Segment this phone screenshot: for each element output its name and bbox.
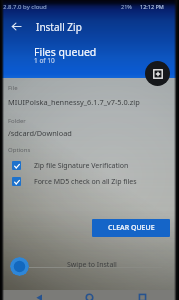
button[interactable]: Recents <box>136 293 149 300</box>
staticText: 2.8.7.0 by cloud <box>3 3 47 11</box>
staticText: Folder <box>8 117 26 125</box>
button[interactable]: Add file <box>145 61 170 86</box>
staticText: Options <box>8 146 31 154</box>
button[interactable]: Home <box>83 293 96 300</box>
staticText: Swipe to Install <box>67 260 117 270</box>
staticText: Install Zip <box>36 20 82 34</box>
button[interactable]: Back <box>8 18 24 34</box>
button[interactable]: Force MD5 check on all Zip files <box>12 176 162 187</box>
button[interactable]: Zip file Signature Verification <box>12 160 162 171</box>
staticText: 12:12 PM <box>140 3 164 10</box>
button[interactable]: Swipe to install <box>10 257 29 276</box>
staticText: MIUIPolska_hennessy_6.1.7_v7-5.0.zip <box>8 97 140 107</box>
button[interactable]: CLEAR QUEUE <box>92 219 170 237</box>
staticText: /sdcard/Download <box>8 128 72 138</box>
staticText: Files queued <box>34 45 97 59</box>
staticText: Force MD5 check on all Zip files <box>34 177 137 187</box>
staticText: File <box>8 84 18 92</box>
staticText: 21% <box>121 3 132 10</box>
staticText: Zip file Signature Verification <box>34 161 129 171</box>
staticText: CLEAR QUEUE <box>108 223 155 233</box>
staticText: 1 of 10 <box>34 56 55 65</box>
button[interactable]: Back <box>33 293 46 300</box>
